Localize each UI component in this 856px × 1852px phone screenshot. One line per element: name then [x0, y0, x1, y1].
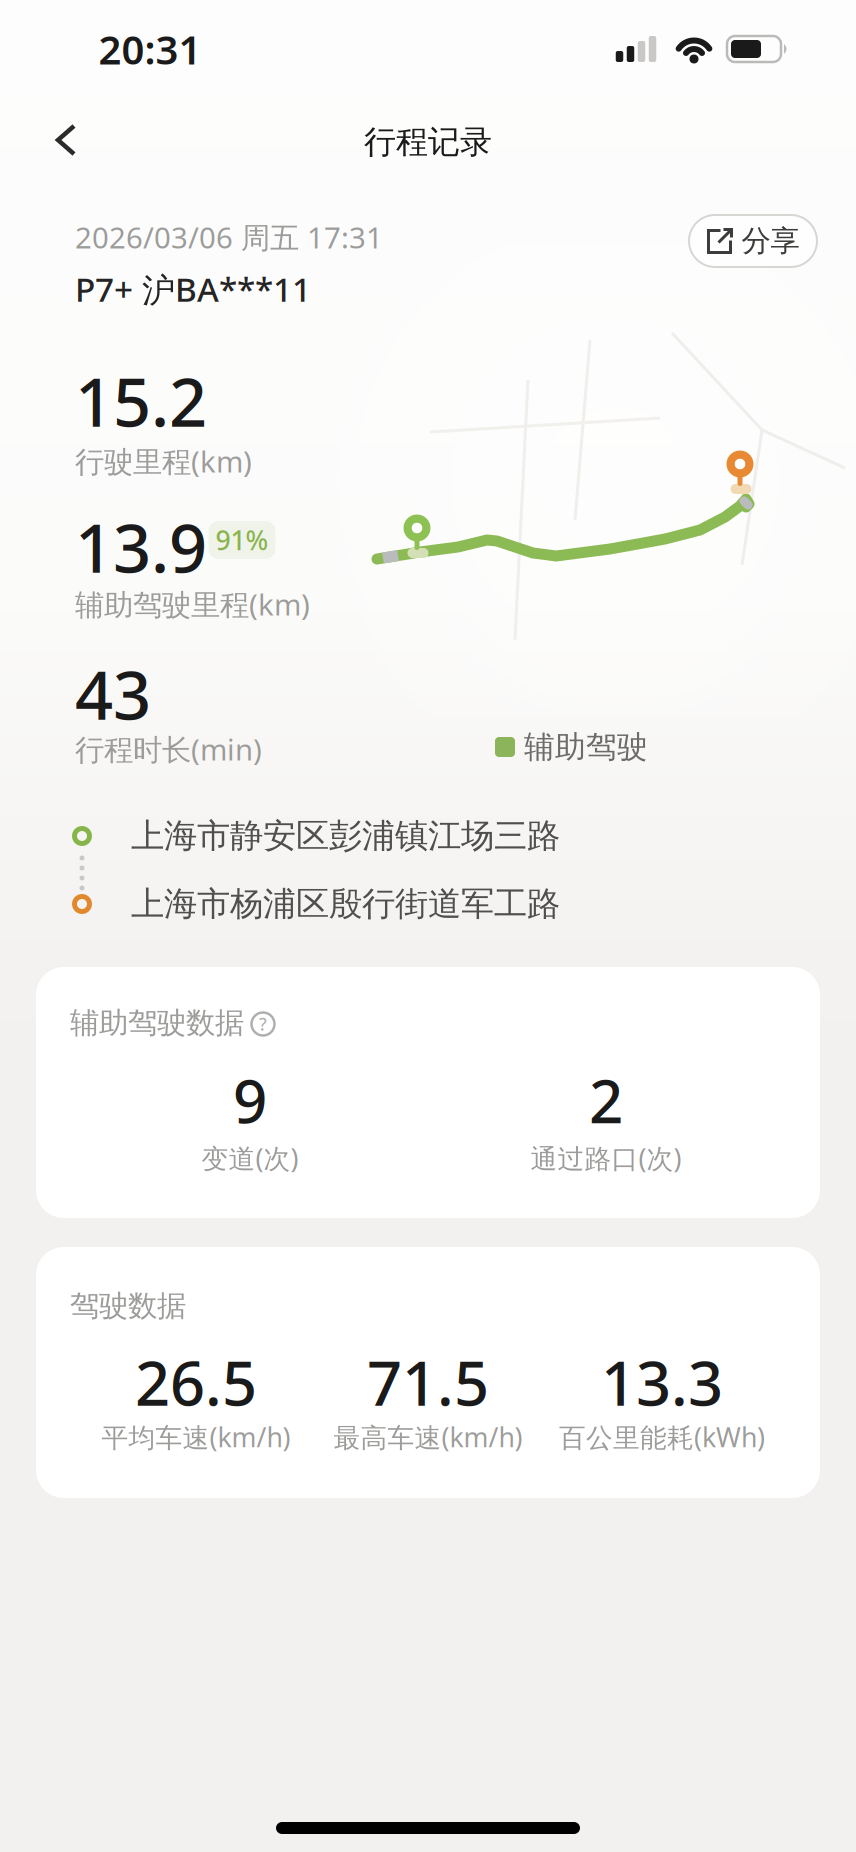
staticText: 变道(次)	[201, 1140, 298, 1176]
staticText: 行程记录	[364, 122, 492, 162]
staticText: 43	[75, 650, 151, 738]
staticText: 行程时长(min)	[75, 729, 262, 768]
button[interactable]: 分享	[689, 215, 817, 267]
staticText: 15.2	[75, 357, 207, 445]
staticText: P7+ 沪BA***11	[75, 267, 311, 311]
staticText: 13.9	[75, 503, 207, 591]
staticText: 上海市静安区彭浦镇江场三路	[131, 815, 560, 856]
staticText: 上海市杨浦区殷行街道军工路	[131, 883, 560, 924]
staticText: ?	[259, 1012, 267, 1035]
staticText: 辅助驾驶	[524, 728, 648, 766]
staticText: 13.3	[601, 1341, 723, 1423]
staticText: 驾驶数据	[70, 1288, 186, 1324]
staticText: 71.5	[367, 1341, 489, 1423]
button[interactable]: 辅助驾驶数据说明	[248, 1009, 278, 1039]
staticText: 分享	[741, 223, 799, 259]
staticText: 20:31	[98, 22, 201, 75]
staticText: 91%	[215, 522, 268, 558]
staticText: 26.5	[135, 1341, 257, 1423]
staticText: 2026/03/06 周五 17:31	[75, 217, 383, 256]
staticText: 辅助驾驶里程(km)	[75, 584, 310, 623]
button[interactable]: 返回	[48, 120, 88, 160]
staticText: 百公里能耗(kWh)	[559, 1419, 765, 1455]
staticText: 最高车速(km/h)	[333, 1419, 522, 1455]
staticText: 9	[233, 1060, 267, 1140]
staticText: 行驶里程(km)	[75, 441, 252, 480]
staticText: 通过路口(次)	[530, 1140, 681, 1176]
staticText: 平均车速(km/h)	[101, 1419, 290, 1455]
staticText: 2	[589, 1060, 623, 1140]
staticText: 辅助驾驶数据	[70, 1005, 244, 1041]
